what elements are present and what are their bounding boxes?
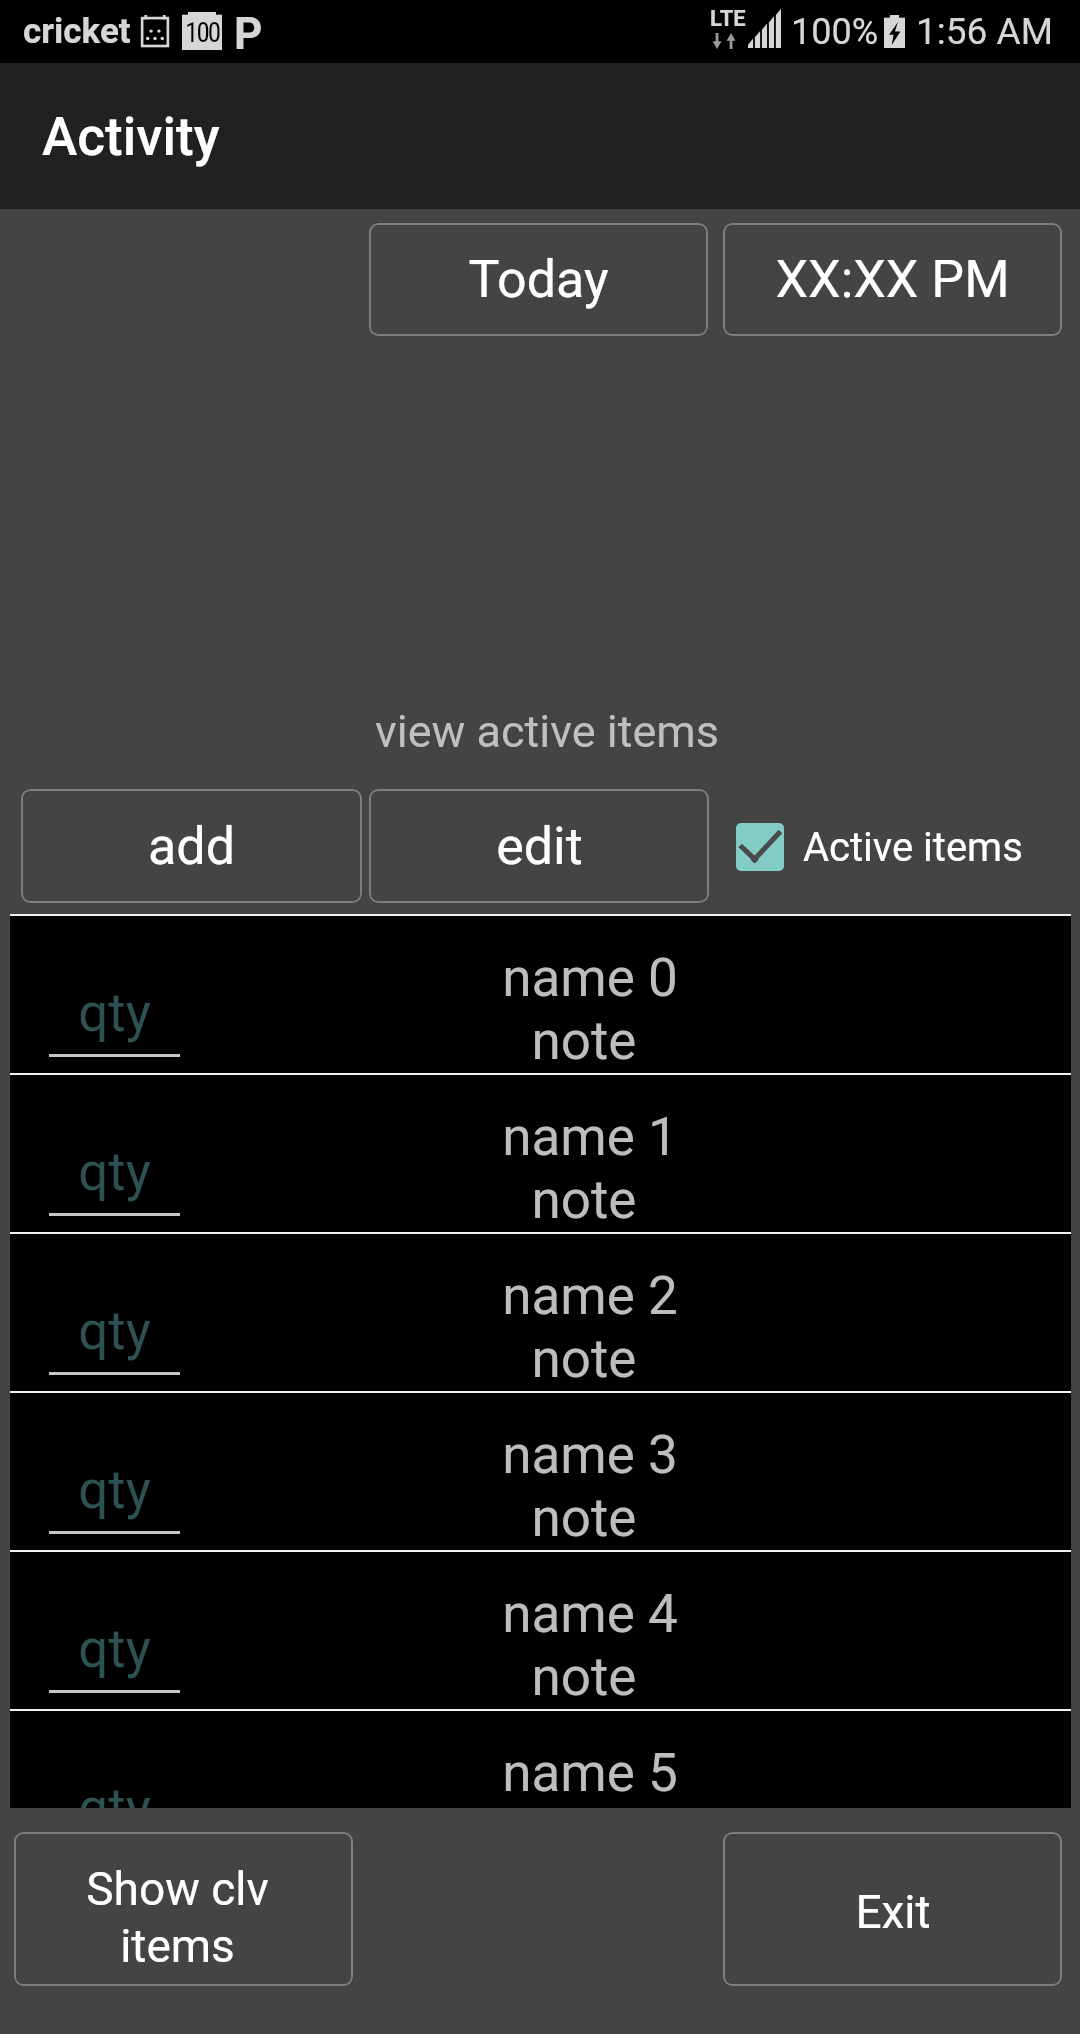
other: Battery charging (884, 15, 905, 48)
staticText: name 0 (380, 947, 800, 1009)
staticText: qty (49, 1300, 180, 1362)
button[interactable]: Show clv items (14, 1832, 353, 1986)
staticText: P (234, 8, 263, 60)
staticText: 1:56 AM (916, 10, 1053, 53)
button[interactable]: XX:XX PM (723, 223, 1062, 336)
button[interactable]: Active items (736, 812, 1023, 882)
other: Calendar (141, 15, 169, 46)
staticText: Exit (855, 1885, 931, 1939)
button[interactable]: Today (369, 223, 708, 336)
staticText: add (148, 816, 235, 877)
other: Mobile data (712, 33, 740, 49)
staticText: name 4 (380, 1583, 800, 1645)
button[interactable]: qty (10, 1552, 1071, 1711)
button[interactable]: edit (369, 789, 709, 903)
staticText: qty (49, 982, 180, 1044)
staticText: note (374, 1328, 794, 1390)
staticText: name 1 (380, 1106, 800, 1168)
staticText: Today (468, 249, 609, 310)
staticText: qty (49, 1459, 180, 1521)
staticText: name 5 (380, 1742, 800, 1804)
staticText: note (374, 1487, 794, 1549)
staticText: view active items (7, 705, 1080, 758)
button[interactable]: qty (10, 1711, 1071, 1808)
staticText: cricket (23, 11, 131, 52)
staticText: qty (49, 1618, 180, 1680)
staticText: name 3 (380, 1424, 800, 1486)
other: Signal strength (748, 15, 781, 48)
button[interactable]: qty (10, 916, 1071, 1075)
staticText: note (374, 1010, 794, 1072)
button[interactable]: add (21, 789, 362, 903)
button[interactable]: qty (10, 1393, 1071, 1552)
staticText: 100% (791, 11, 879, 53)
button[interactable]: qty (10, 1234, 1071, 1393)
staticText: qty (49, 1141, 180, 1203)
staticText: name 2 (380, 1265, 800, 1327)
staticText: note (374, 1169, 794, 1231)
staticText: Show clv items (86, 1862, 269, 1973)
staticText: qty (49, 1777, 180, 1808)
staticText: 100 (185, 17, 245, 49)
staticText: XX:XX PM (775, 249, 1010, 310)
button[interactable]: Exit (723, 1832, 1062, 1986)
button[interactable]: qty (10, 1075, 1071, 1234)
staticText: LTE (710, 6, 746, 32)
staticText: edit (496, 816, 583, 877)
staticText: Activity (42, 106, 220, 168)
staticText: Active items (803, 824, 1023, 871)
staticText: note (374, 1646, 794, 1708)
